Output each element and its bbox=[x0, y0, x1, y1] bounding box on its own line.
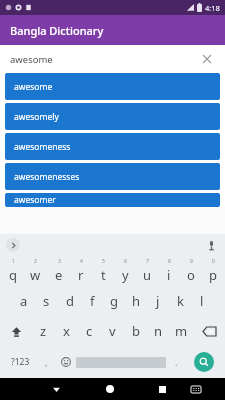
button[interactable]: 7 bbox=[136, 256, 158, 286]
button[interactable]: j bbox=[147, 286, 169, 316]
button[interactable]: 3 bbox=[47, 256, 70, 286]
staticText: Bangla Dictionary bbox=[10, 23, 104, 38]
staticText: 2 bbox=[34, 258, 37, 265]
button[interactable]: 9 bbox=[180, 256, 202, 286]
staticText: g bbox=[110, 292, 118, 310]
button[interactable]: c bbox=[78, 316, 101, 346]
button[interactable]: Switch keyboard bbox=[179, 378, 212, 400]
staticText: 3 bbox=[58, 258, 61, 265]
button[interactable]: g bbox=[103, 286, 125, 316]
button[interactable]: n bbox=[147, 316, 170, 346]
button[interactable]: v bbox=[101, 316, 124, 346]
staticText: x bbox=[63, 322, 70, 340]
button[interactable]: 6 bbox=[114, 256, 136, 286]
staticText: awesome bbox=[10, 53, 53, 66]
button[interactable]: 1 bbox=[1, 256, 24, 286]
button[interactable]: z bbox=[32, 316, 55, 346]
button[interactable]: Voice input bbox=[203, 237, 219, 253]
staticText: ?123 bbox=[11, 356, 30, 368]
staticText: e bbox=[55, 266, 63, 284]
staticText: d bbox=[66, 292, 74, 310]
button[interactable]: 8 bbox=[158, 256, 180, 286]
staticText: h bbox=[132, 292, 141, 310]
button[interactable]: awesomeness bbox=[5, 133, 220, 160]
staticText: 0 bbox=[212, 258, 215, 265]
button[interactable]: awesomer bbox=[5, 193, 220, 207]
staticText: i bbox=[167, 266, 171, 284]
staticText: awesome bbox=[14, 81, 53, 93]
staticText: q bbox=[9, 266, 17, 284]
staticText: , bbox=[45, 356, 48, 368]
staticText: 4 bbox=[80, 258, 83, 265]
button[interactable]: Home bbox=[93, 378, 126, 400]
button[interactable]: awesome bbox=[0, 45, 225, 73]
staticText: o bbox=[187, 266, 195, 284]
button[interactable]: Recents bbox=[146, 378, 179, 400]
staticText: l bbox=[200, 292, 204, 310]
button[interactable]: m bbox=[170, 316, 193, 346]
button[interactable]: Backspace bbox=[193, 316, 225, 346]
button[interactable]: h bbox=[125, 286, 147, 316]
staticText: 9 bbox=[190, 258, 193, 265]
button[interactable]: x bbox=[55, 316, 78, 346]
staticText: 6 bbox=[124, 258, 127, 265]
button[interactable]: f bbox=[81, 286, 103, 316]
staticText: . bbox=[175, 356, 178, 368]
button[interactable]: 5 bbox=[92, 256, 114, 286]
staticText: 4:18 bbox=[205, 3, 220, 13]
staticText: y bbox=[122, 266, 129, 284]
staticText: t bbox=[101, 266, 106, 284]
staticText: 7 bbox=[146, 258, 149, 265]
button[interactable]: Clear search bbox=[199, 51, 215, 67]
staticText: c bbox=[86, 322, 93, 340]
staticText: r bbox=[78, 266, 84, 284]
staticText: p bbox=[209, 266, 217, 284]
button[interactable]: awesomenesses bbox=[5, 163, 220, 190]
staticText: k bbox=[177, 292, 184, 310]
button[interactable]: 2 bbox=[24, 256, 47, 286]
staticText: a bbox=[20, 292, 28, 310]
button[interactable]: Shift bbox=[0, 316, 32, 346]
button[interactable]: a bbox=[12, 286, 35, 316]
staticText: z bbox=[40, 322, 47, 340]
staticText: f bbox=[90, 292, 95, 310]
staticText: w bbox=[30, 266, 41, 284]
button[interactable]: 4 bbox=[70, 256, 92, 286]
button[interactable]: Comma bbox=[37, 346, 55, 378]
staticText: j bbox=[156, 292, 160, 310]
button[interactable]: awesomely bbox=[5, 103, 220, 130]
staticText: b bbox=[132, 322, 140, 340]
button[interactable]: d bbox=[58, 286, 81, 316]
staticText: 8 bbox=[168, 258, 171, 265]
button[interactable]: s bbox=[35, 286, 58, 316]
button[interactable]: b bbox=[124, 316, 147, 346]
button[interactable]: l bbox=[191, 286, 213, 316]
staticText: s bbox=[43, 292, 50, 310]
staticText: n bbox=[154, 322, 163, 340]
button[interactable]: Back bbox=[40, 378, 73, 400]
staticText: awesomenesses bbox=[14, 171, 80, 183]
staticText: m bbox=[175, 322, 188, 340]
button[interactable]: Emoji bbox=[55, 346, 76, 378]
button[interactable]: ?123 bbox=[4, 346, 37, 378]
button[interactable]: 0 bbox=[202, 256, 224, 286]
staticText: awesomeness bbox=[14, 141, 71, 153]
button[interactable]: k bbox=[169, 286, 191, 316]
staticText: u bbox=[143, 266, 152, 284]
staticText: awesomer bbox=[14, 194, 56, 206]
staticText: v bbox=[109, 322, 116, 340]
button[interactable]: awesome bbox=[5, 73, 220, 100]
staticText: 1 bbox=[12, 258, 15, 265]
staticText: 5 bbox=[102, 258, 105, 265]
button[interactable]: Search bbox=[187, 346, 221, 378]
button[interactable]: Expand suggestions bbox=[6, 238, 20, 252]
staticText: awesomely bbox=[14, 111, 59, 123]
